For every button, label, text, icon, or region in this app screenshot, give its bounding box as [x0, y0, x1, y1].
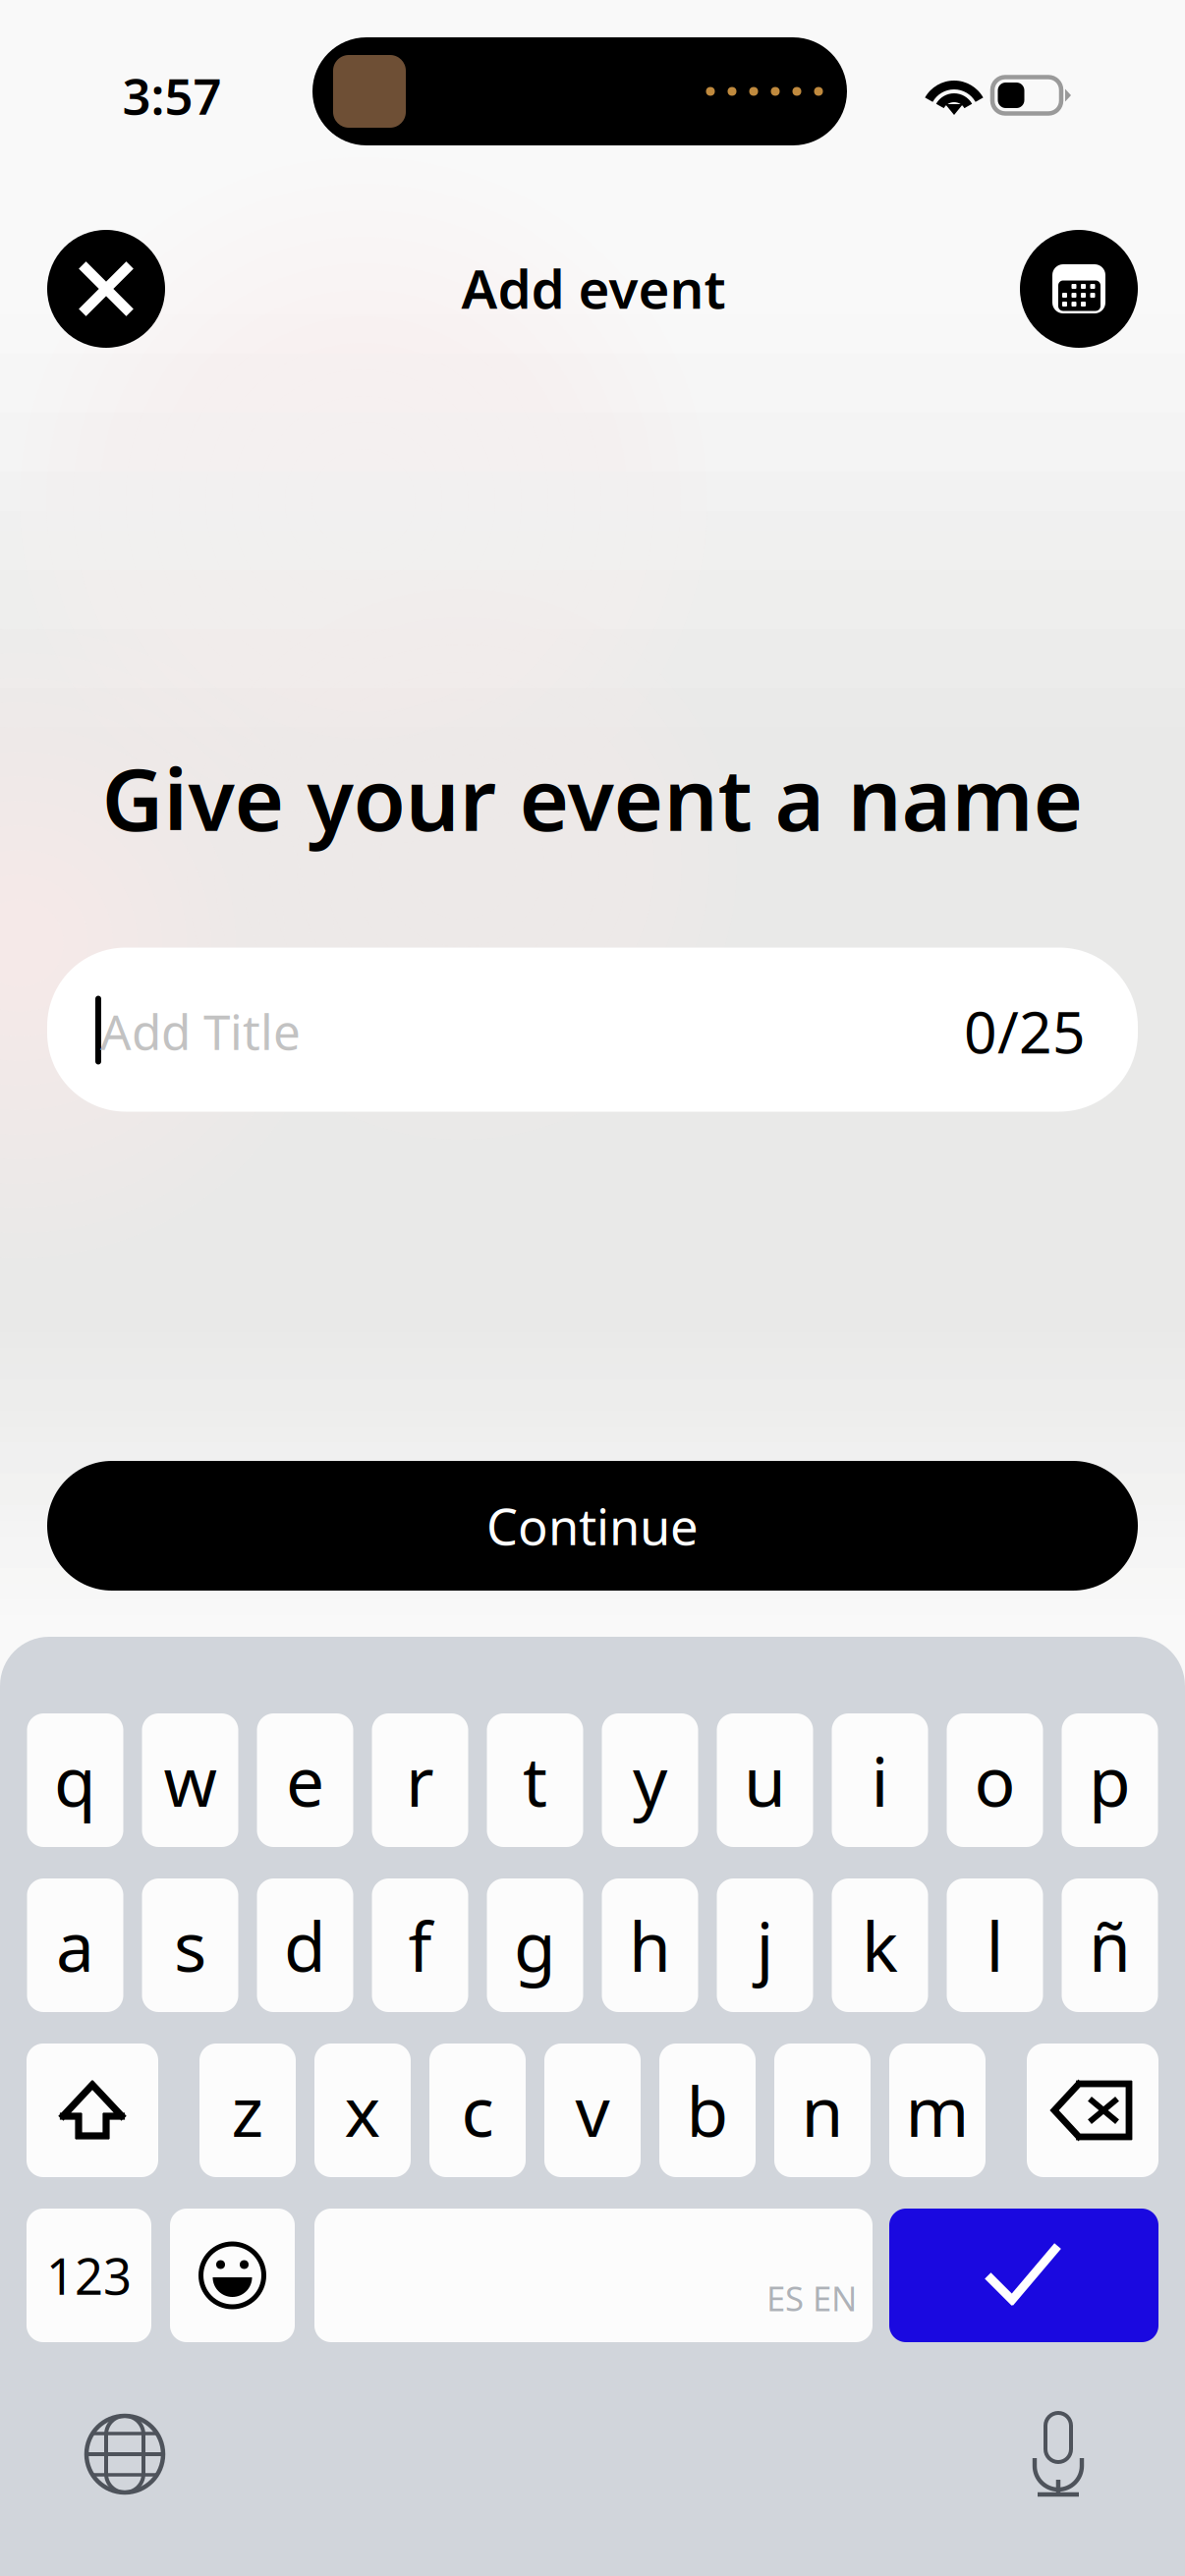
staticText: 0/25 — [964, 993, 1086, 1069]
staticText: ES EN — [766, 2275, 857, 2321]
staticText: Add event — [461, 252, 726, 324]
button[interactable]: z — [199, 2044, 296, 2177]
staticText: s — [174, 1900, 206, 1991]
staticText: p — [1089, 1735, 1131, 1826]
button[interactable]: Shift — [27, 2044, 158, 2177]
staticText: t — [523, 1735, 547, 1826]
button[interactable]: v — [544, 2044, 641, 2177]
staticText: h — [629, 1900, 671, 1991]
staticText: i — [871, 1735, 889, 1826]
staticText: g — [514, 1900, 556, 1991]
button[interactable]: i — [832, 1713, 928, 1847]
staticText: 3:57 — [122, 62, 222, 128]
button[interactable]: a — [27, 1878, 123, 2012]
button[interactable]: y — [602, 1713, 698, 1847]
staticText: d — [284, 1900, 326, 1991]
button[interactable]: t — [487, 1713, 583, 1847]
staticText: c — [461, 2065, 494, 2156]
button[interactable]: Close — [47, 230, 165, 348]
button[interactable]: Dictate — [1024, 2409, 1093, 2499]
button[interactable]: f — [372, 1878, 468, 2012]
button[interactable]: w — [142, 1713, 238, 1847]
staticText: Add Title — [100, 999, 301, 1063]
staticText: j — [756, 1900, 774, 1991]
staticText: w — [164, 1735, 217, 1826]
staticText: u — [744, 1735, 786, 1826]
button[interactable]: c — [429, 2044, 526, 2177]
staticText: k — [862, 1900, 898, 1991]
staticText: f — [408, 1900, 432, 1991]
staticText: Continue — [486, 1493, 699, 1559]
button[interactable]: x — [314, 2044, 411, 2177]
button[interactable]: p — [1062, 1713, 1158, 1847]
staticText: o — [974, 1735, 1016, 1826]
staticText: z — [231, 2065, 264, 2156]
button[interactable]: l — [947, 1878, 1043, 2012]
button[interactable]: m — [889, 2044, 986, 2177]
button[interactable]: h — [602, 1878, 698, 2012]
button[interactable]: 123 — [27, 2209, 151, 2342]
button[interactable]: Delete — [1027, 2044, 1158, 2177]
staticText: e — [286, 1735, 324, 1826]
staticText: l — [986, 1900, 1004, 1991]
staticText: y — [633, 1735, 667, 1826]
button[interactable]: s — [142, 1878, 238, 2012]
button[interactable]: ñ — [1062, 1878, 1158, 2012]
staticText: x — [344, 2065, 381, 2156]
staticText: q — [54, 1735, 96, 1826]
button[interactable]: u — [717, 1713, 813, 1847]
button[interactable]: r — [372, 1713, 468, 1847]
staticText: 123 — [46, 2242, 132, 2308]
staticText: a — [56, 1900, 94, 1991]
button[interactable]: Emoji — [170, 2209, 295, 2342]
button[interactable]: Next keyboard — [83, 2412, 167, 2496]
button[interactable]: o — [947, 1713, 1043, 1847]
button[interactable]: b — [659, 2044, 756, 2177]
button[interactable]: n — [774, 2044, 871, 2177]
staticText: b — [686, 2065, 729, 2156]
button[interactable]: g — [487, 1878, 583, 2012]
button[interactable]: q — [27, 1713, 123, 1847]
button[interactable]: k — [832, 1878, 928, 2012]
button[interactable]: Calendar — [1020, 230, 1138, 348]
button[interactable]: Return — [889, 2209, 1158, 2342]
staticText: r — [406, 1735, 434, 1826]
button[interactable]: Continue — [47, 1461, 1138, 1591]
staticText: ñ — [1089, 1900, 1131, 1991]
staticText: Give your event a name — [102, 741, 1083, 854]
button[interactable]: e — [257, 1713, 353, 1847]
button[interactable]: d — [257, 1878, 353, 2012]
staticText: m — [905, 2065, 969, 2156]
button[interactable]: Space — [314, 2209, 873, 2342]
staticText: n — [801, 2065, 844, 2156]
button[interactable]: j — [717, 1878, 813, 2012]
staticText: v — [575, 2065, 610, 2156]
